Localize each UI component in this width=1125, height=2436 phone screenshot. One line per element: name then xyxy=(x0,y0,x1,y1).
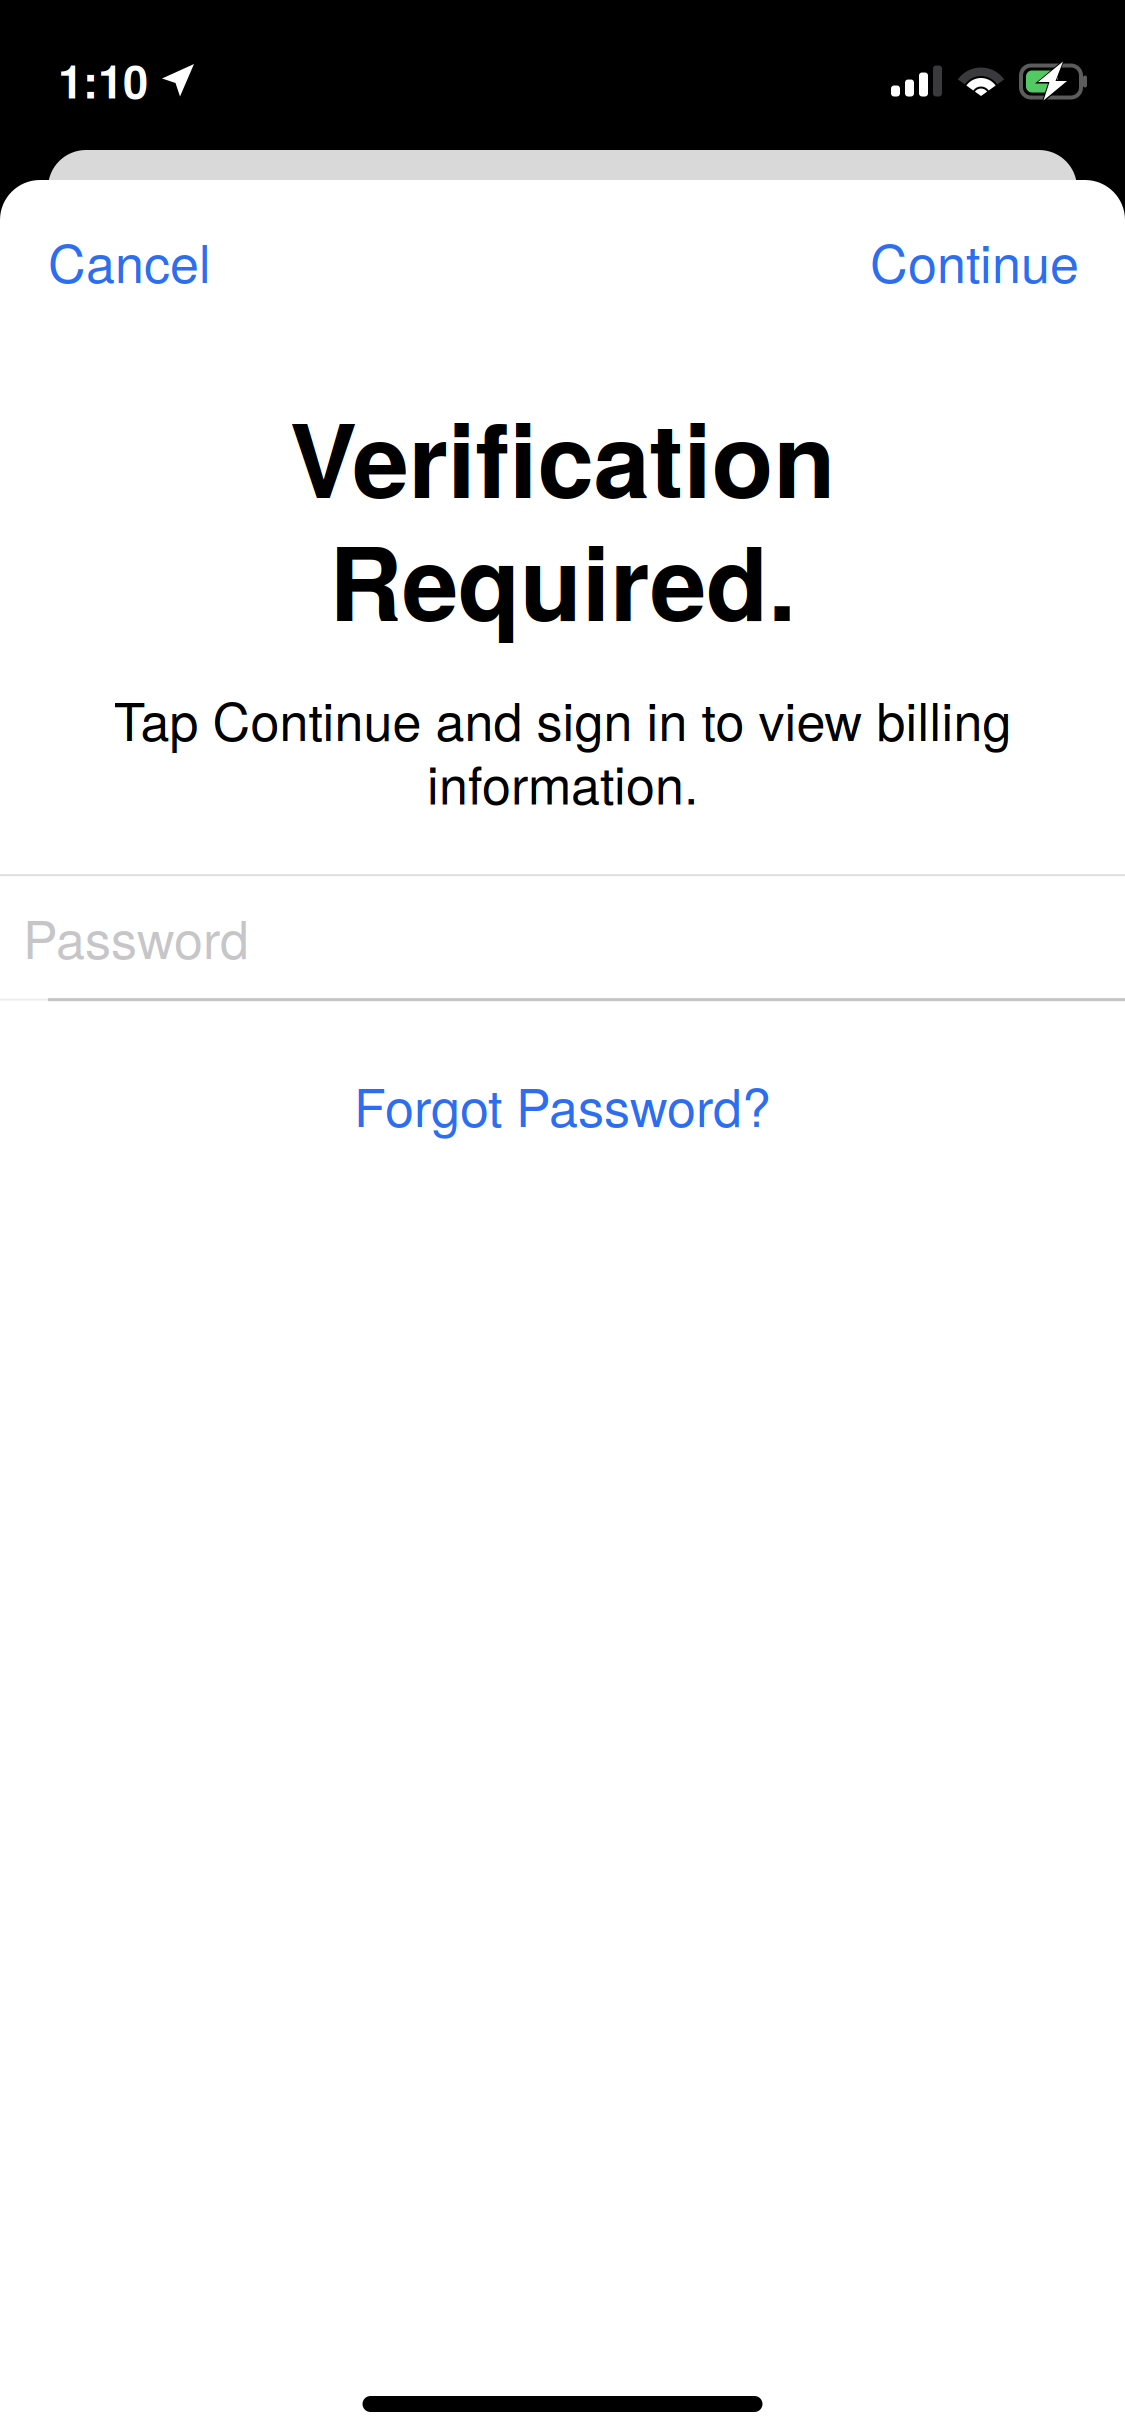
staticText: Cancel xyxy=(48,223,211,298)
staticText: 1:10 xyxy=(58,47,148,112)
button[interactable]: Password xyxy=(0,876,1125,998)
staticText: Tap Continue and sign in to view billing xyxy=(113,681,1011,756)
staticText: Forgot Password? xyxy=(354,1067,771,1142)
staticText: information. xyxy=(427,745,698,819)
staticText: Password xyxy=(23,899,249,974)
button[interactable]: Cancel xyxy=(0,223,251,298)
button[interactable]: Forgot Password? xyxy=(314,1067,811,1142)
staticText: Verification xyxy=(289,384,835,529)
staticText: Continue xyxy=(870,223,1079,298)
staticText: Required. xyxy=(329,507,796,652)
button[interactable]: Continue xyxy=(830,223,1125,298)
